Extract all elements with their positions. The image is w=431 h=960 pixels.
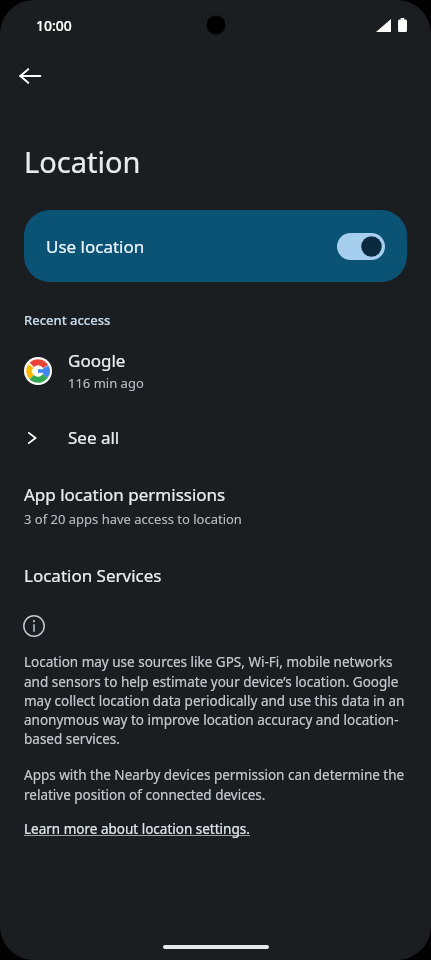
- staticText: Location Services: [24, 564, 162, 587]
- button[interactable]: Use location: [24, 210, 407, 282]
- staticText: Apps with the Nearby devices permission …: [24, 766, 409, 804]
- staticText: 116 min ago: [68, 374, 144, 392]
- staticText: 3 of 20 apps have access to location: [24, 510, 242, 528]
- button[interactable]: See all: [0, 420, 431, 455]
- staticText: Location: [24, 142, 141, 181]
- staticText: See all: [68, 426, 120, 449]
- button[interactable]: Back: [8, 54, 52, 98]
- staticText: Recent access: [24, 311, 111, 329]
- button[interactable]: Learn more about location settings.: [24, 820, 250, 838]
- staticText: Google: [68, 349, 126, 372]
- staticText: Use location: [46, 235, 145, 258]
- staticText: Location may use sources like GPS, Wi-Fi…: [24, 653, 409, 748]
- staticText: App location permissions: [24, 483, 226, 506]
- button[interactable]: App location permissions: [0, 481, 431, 530]
- staticText: Learn more about location settings.: [24, 820, 250, 838]
- staticText: 10:00: [36, 16, 72, 35]
- button[interactable]: Location Services: [0, 562, 431, 589]
- button[interactable]: Google: [0, 345, 431, 396]
